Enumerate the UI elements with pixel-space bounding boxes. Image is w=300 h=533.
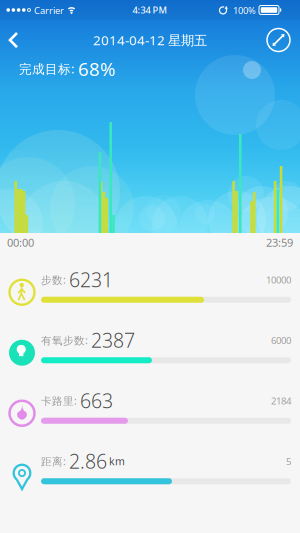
staticText: 有氧步数: [41, 333, 88, 347]
staticText: Carrier [34, 4, 64, 17]
staticText: 100% [233, 4, 256, 17]
staticText: 完成目标: [19, 60, 74, 77]
staticText: 2387 [91, 327, 135, 354]
button[interactable] [3, 27, 24, 53]
button[interactable]: 距离: [0, 437, 300, 498]
staticText: 2.86 [69, 448, 107, 475]
button[interactable]: 卡路里: [0, 377, 300, 437]
staticText: 6231 [69, 266, 113, 293]
button[interactable]: 有氧步数: [0, 316, 300, 377]
staticText: 步数: [41, 272, 66, 287]
staticText: 00:00 [7, 235, 34, 250]
staticText: 10000 [266, 273, 291, 286]
staticText: 663 [80, 387, 113, 414]
staticText: 6000 [271, 334, 291, 347]
button[interactable] [267, 28, 290, 51]
staticText: 距离: [41, 454, 66, 468]
staticText: 68% [78, 56, 115, 81]
staticText: km [109, 454, 125, 468]
staticText: 2184 [271, 394, 291, 407]
button[interactable]: 步数: [0, 256, 300, 316]
staticText: 4:34 PM [132, 4, 167, 16]
staticText: 2014-04-12 星期五 [93, 31, 207, 49]
staticText: 卡路里: [41, 393, 77, 408]
staticText: 23:59 [266, 235, 293, 250]
staticText: 5 [286, 455, 291, 468]
